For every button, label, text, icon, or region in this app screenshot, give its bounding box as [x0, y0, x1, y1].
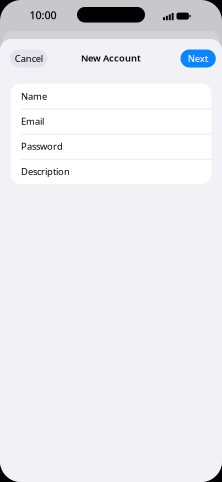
staticText: Cancel: [15, 52, 43, 65]
staticText: Password: [21, 140, 63, 152]
staticText: New Account: [81, 52, 141, 64]
button[interactable]: Description: [10, 159, 211, 184]
button[interactable]: Cancel: [10, 49, 47, 67]
staticText: Name: [21, 90, 47, 102]
button[interactable]: Password: [10, 134, 211, 159]
staticText: Next: [188, 52, 209, 65]
staticText: Email: [21, 115, 44, 127]
staticText: 10:00: [29, 8, 56, 22]
button[interactable]: Name: [10, 83, 211, 109]
staticText: Description: [21, 165, 70, 178]
button[interactable]: Next: [180, 49, 216, 67]
button[interactable]: Email: [10, 109, 211, 134]
